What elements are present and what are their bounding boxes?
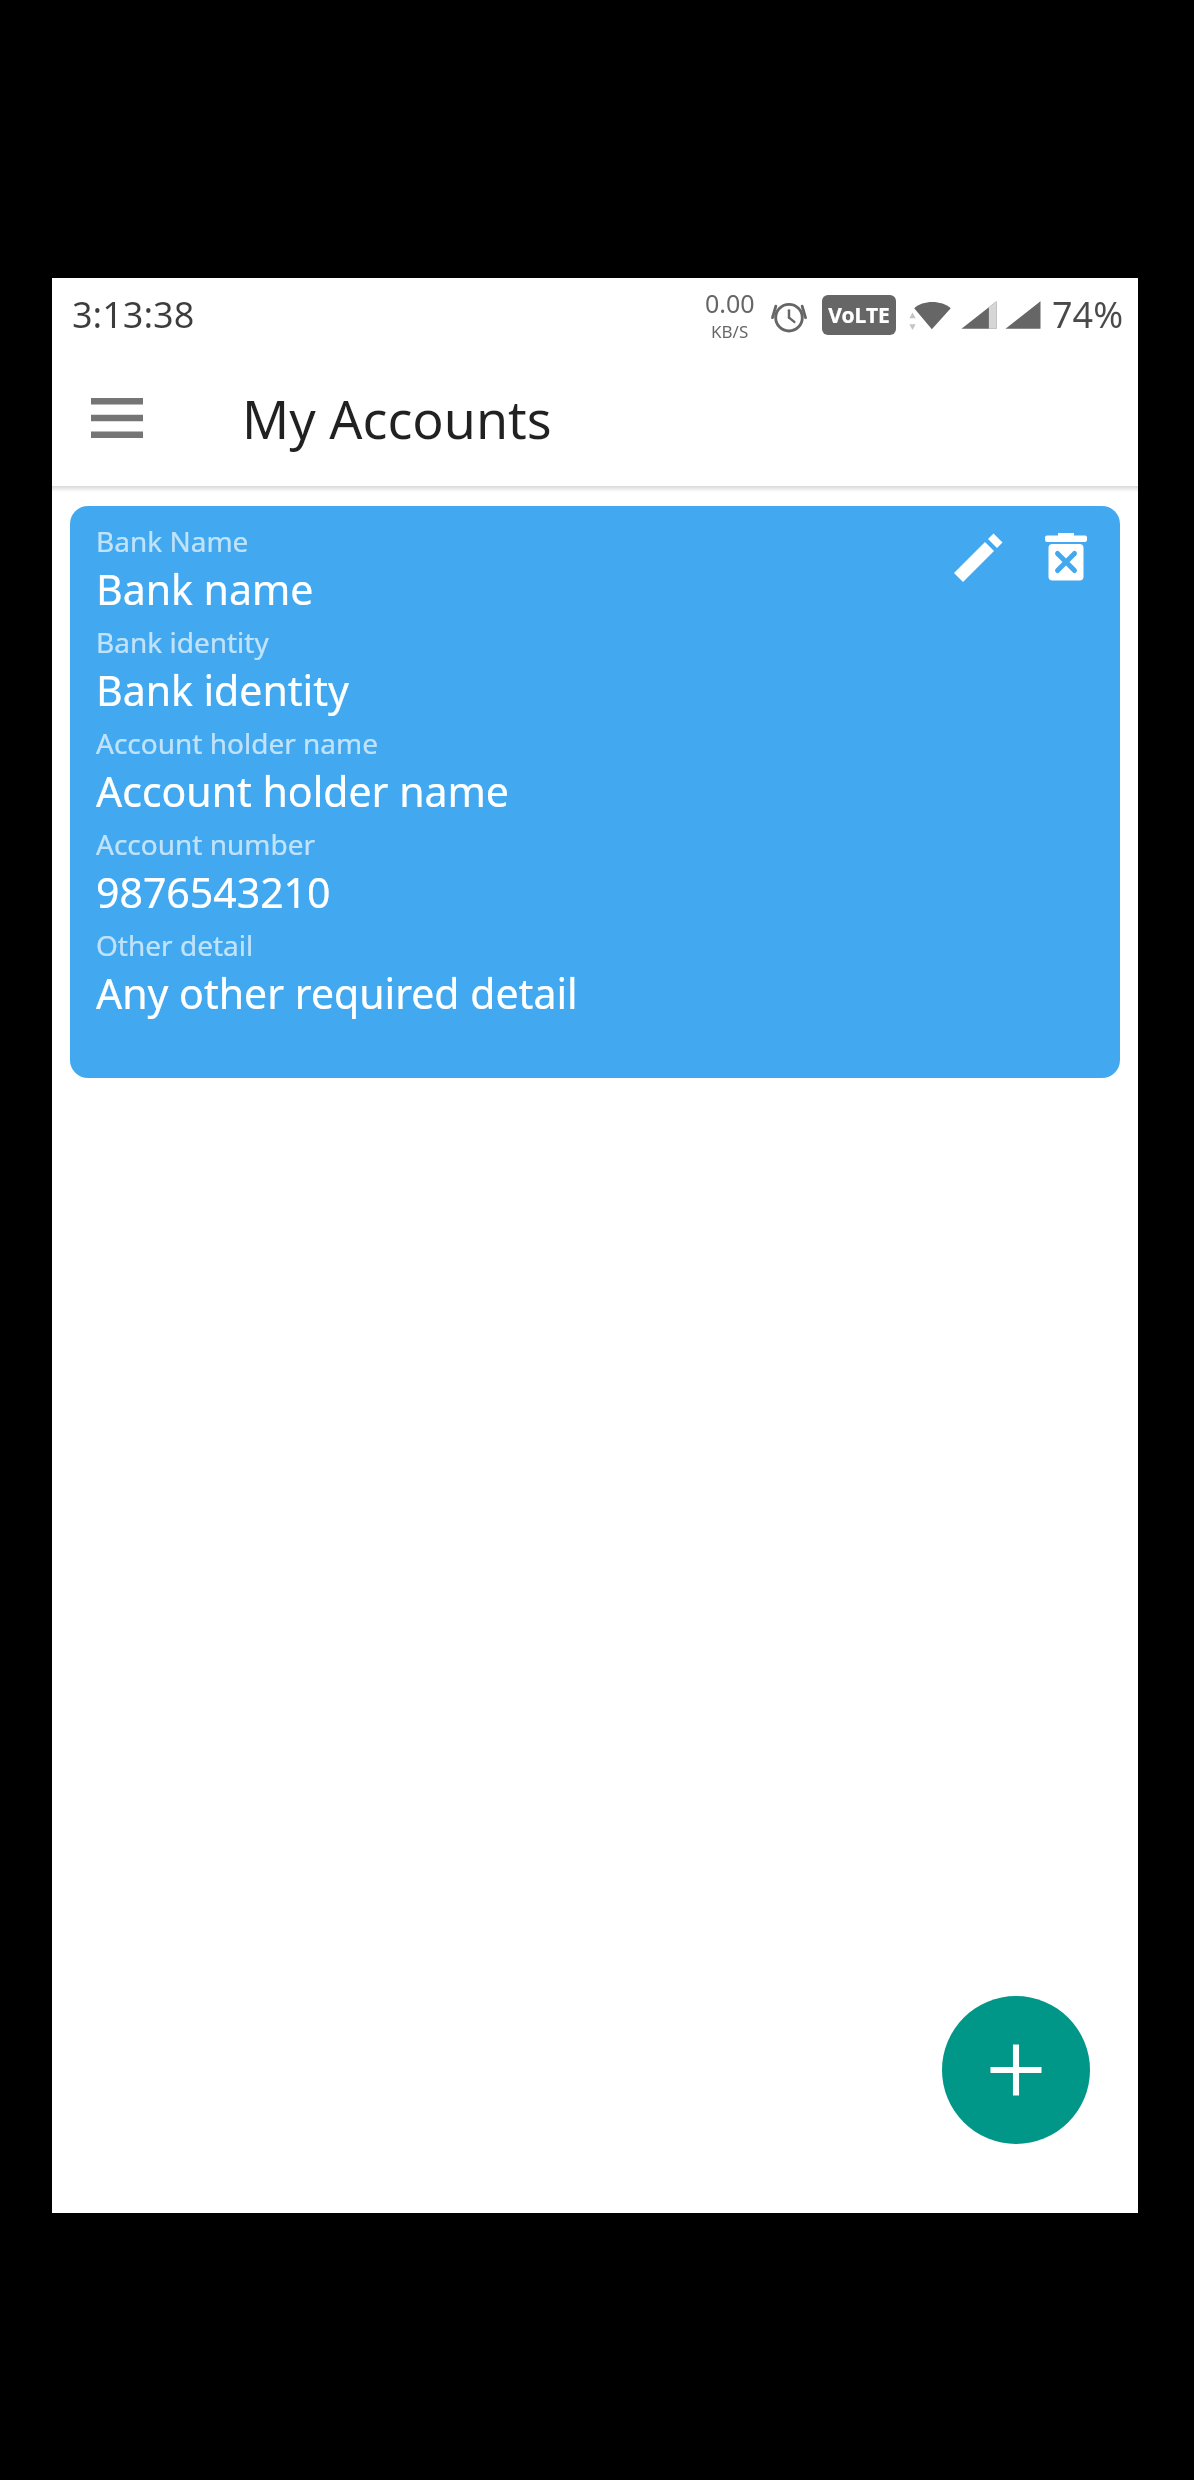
staticText: 74% xyxy=(1052,290,1124,339)
button[interactable]: Add account xyxy=(942,1996,1090,2144)
staticText: VoLTE xyxy=(828,301,890,330)
staticText: Other detail xyxy=(96,926,254,964)
staticText: Account holder name xyxy=(96,763,509,819)
staticText: 9876543210 xyxy=(96,864,331,920)
staticText: Bank identity xyxy=(96,623,269,661)
staticText: Bank identity xyxy=(96,662,349,718)
staticText: 3:13:38 xyxy=(72,290,195,339)
staticText: Bank Name xyxy=(96,522,249,560)
staticText: Bank name xyxy=(96,561,314,617)
staticText: Any other required detail xyxy=(96,965,578,1021)
staticText: Account holder name xyxy=(96,724,379,762)
staticText: 0.00 xyxy=(705,286,755,320)
button[interactable]: Bank Name xyxy=(70,506,1120,1078)
button[interactable]: Open navigation menu xyxy=(74,375,160,461)
button[interactable]: Edit account xyxy=(946,526,1010,590)
staticText: Account number xyxy=(96,825,316,863)
staticText: My Accounts xyxy=(242,383,552,454)
button[interactable]: Delete account xyxy=(1034,526,1098,590)
staticText: KB/S xyxy=(711,320,749,343)
